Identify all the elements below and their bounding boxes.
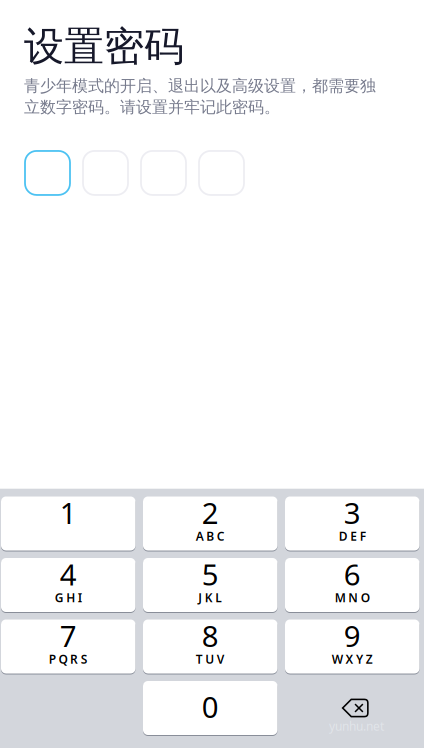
staticText: MNO (335, 589, 370, 605)
staticText: 1 (60, 493, 77, 532)
staticText: 设置密码 (24, 22, 184, 71)
button[interactable]: 2 (143, 496, 277, 550)
staticText: 青少年模式的开启、退出以及高级设置，都需要独立数字密码。请设置并牢记此密码。 (24, 76, 376, 117)
button[interactable]: 5 (143, 558, 277, 612)
staticText: DEF (339, 528, 366, 544)
staticText: 0 (202, 687, 219, 726)
staticText: ABC (196, 528, 225, 544)
staticText: 3 (344, 493, 361, 532)
button[interactable]: 7 (1, 619, 135, 673)
staticText: JKL (198, 589, 222, 605)
staticText: 5 (202, 555, 219, 594)
button[interactable]: 8 (143, 619, 277, 673)
staticText: 7 (60, 616, 77, 655)
staticText: WXYZ (332, 651, 373, 667)
button[interactable]: 1 (1, 496, 135, 550)
button[interactable]: 6 (285, 558, 419, 612)
staticText: GHI (55, 589, 82, 605)
staticText: PQRS (49, 651, 88, 667)
button[interactable]: 3 (285, 496, 419, 550)
staticText: 6 (344, 555, 361, 594)
button[interactable]: 0 (143, 681, 277, 735)
button[interactable]: Delete (285, 681, 419, 735)
staticText: 2 (202, 493, 219, 532)
button[interactable]: 4 (1, 558, 135, 612)
staticText: 9 (344, 616, 361, 655)
staticText: yunhu.net (329, 718, 384, 734)
staticText: 4 (60, 555, 77, 594)
button[interactable]: 9 (285, 619, 419, 673)
staticText: 8 (202, 616, 219, 655)
staticText: TUV (196, 651, 225, 667)
